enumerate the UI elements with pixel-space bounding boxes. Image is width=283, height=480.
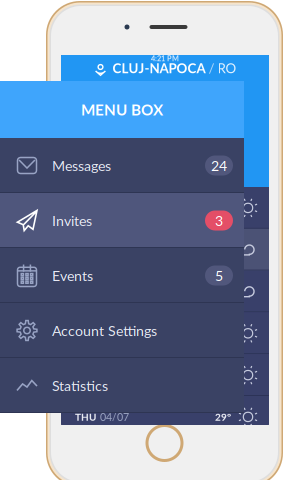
staticText: 4:21 PM	[151, 54, 179, 63]
staticText: 04/05	[98, 327, 127, 340]
staticText: 3	[215, 212, 223, 229]
button[interactable]: Account Settings	[0, 303, 244, 358]
staticText: /	[205, 60, 217, 76]
button[interactable]: Statistics	[0, 358, 244, 413]
staticText: 31°	[215, 202, 231, 214]
staticText: Invites	[52, 212, 92, 229]
button[interactable]: Messages	[0, 138, 244, 193]
staticText: Statistics	[52, 377, 108, 394]
staticText: Events	[52, 267, 93, 284]
staticText: Messages	[52, 157, 111, 174]
button[interactable]: MENU BOX	[0, 81, 244, 138]
button[interactable]: Invites	[0, 193, 244, 248]
staticText: 24	[211, 157, 227, 174]
staticText: CLUJ-NAPOCA	[112, 60, 205, 76]
staticText: MENU BOX	[81, 100, 163, 119]
staticText: TUE	[75, 327, 94, 339]
staticText: RO	[217, 60, 236, 76]
staticText: SUN	[75, 244, 95, 256]
staticText: 27°	[215, 244, 231, 256]
staticText: THU	[75, 411, 96, 423]
staticText: 5	[215, 267, 223, 284]
button[interactable]: Events	[0, 248, 244, 303]
staticText: 04/03	[99, 243, 128, 256]
staticText: Account Settings	[52, 322, 157, 339]
staticText: 29°	[215, 411, 231, 423]
staticText: 04/07	[100, 410, 129, 423]
